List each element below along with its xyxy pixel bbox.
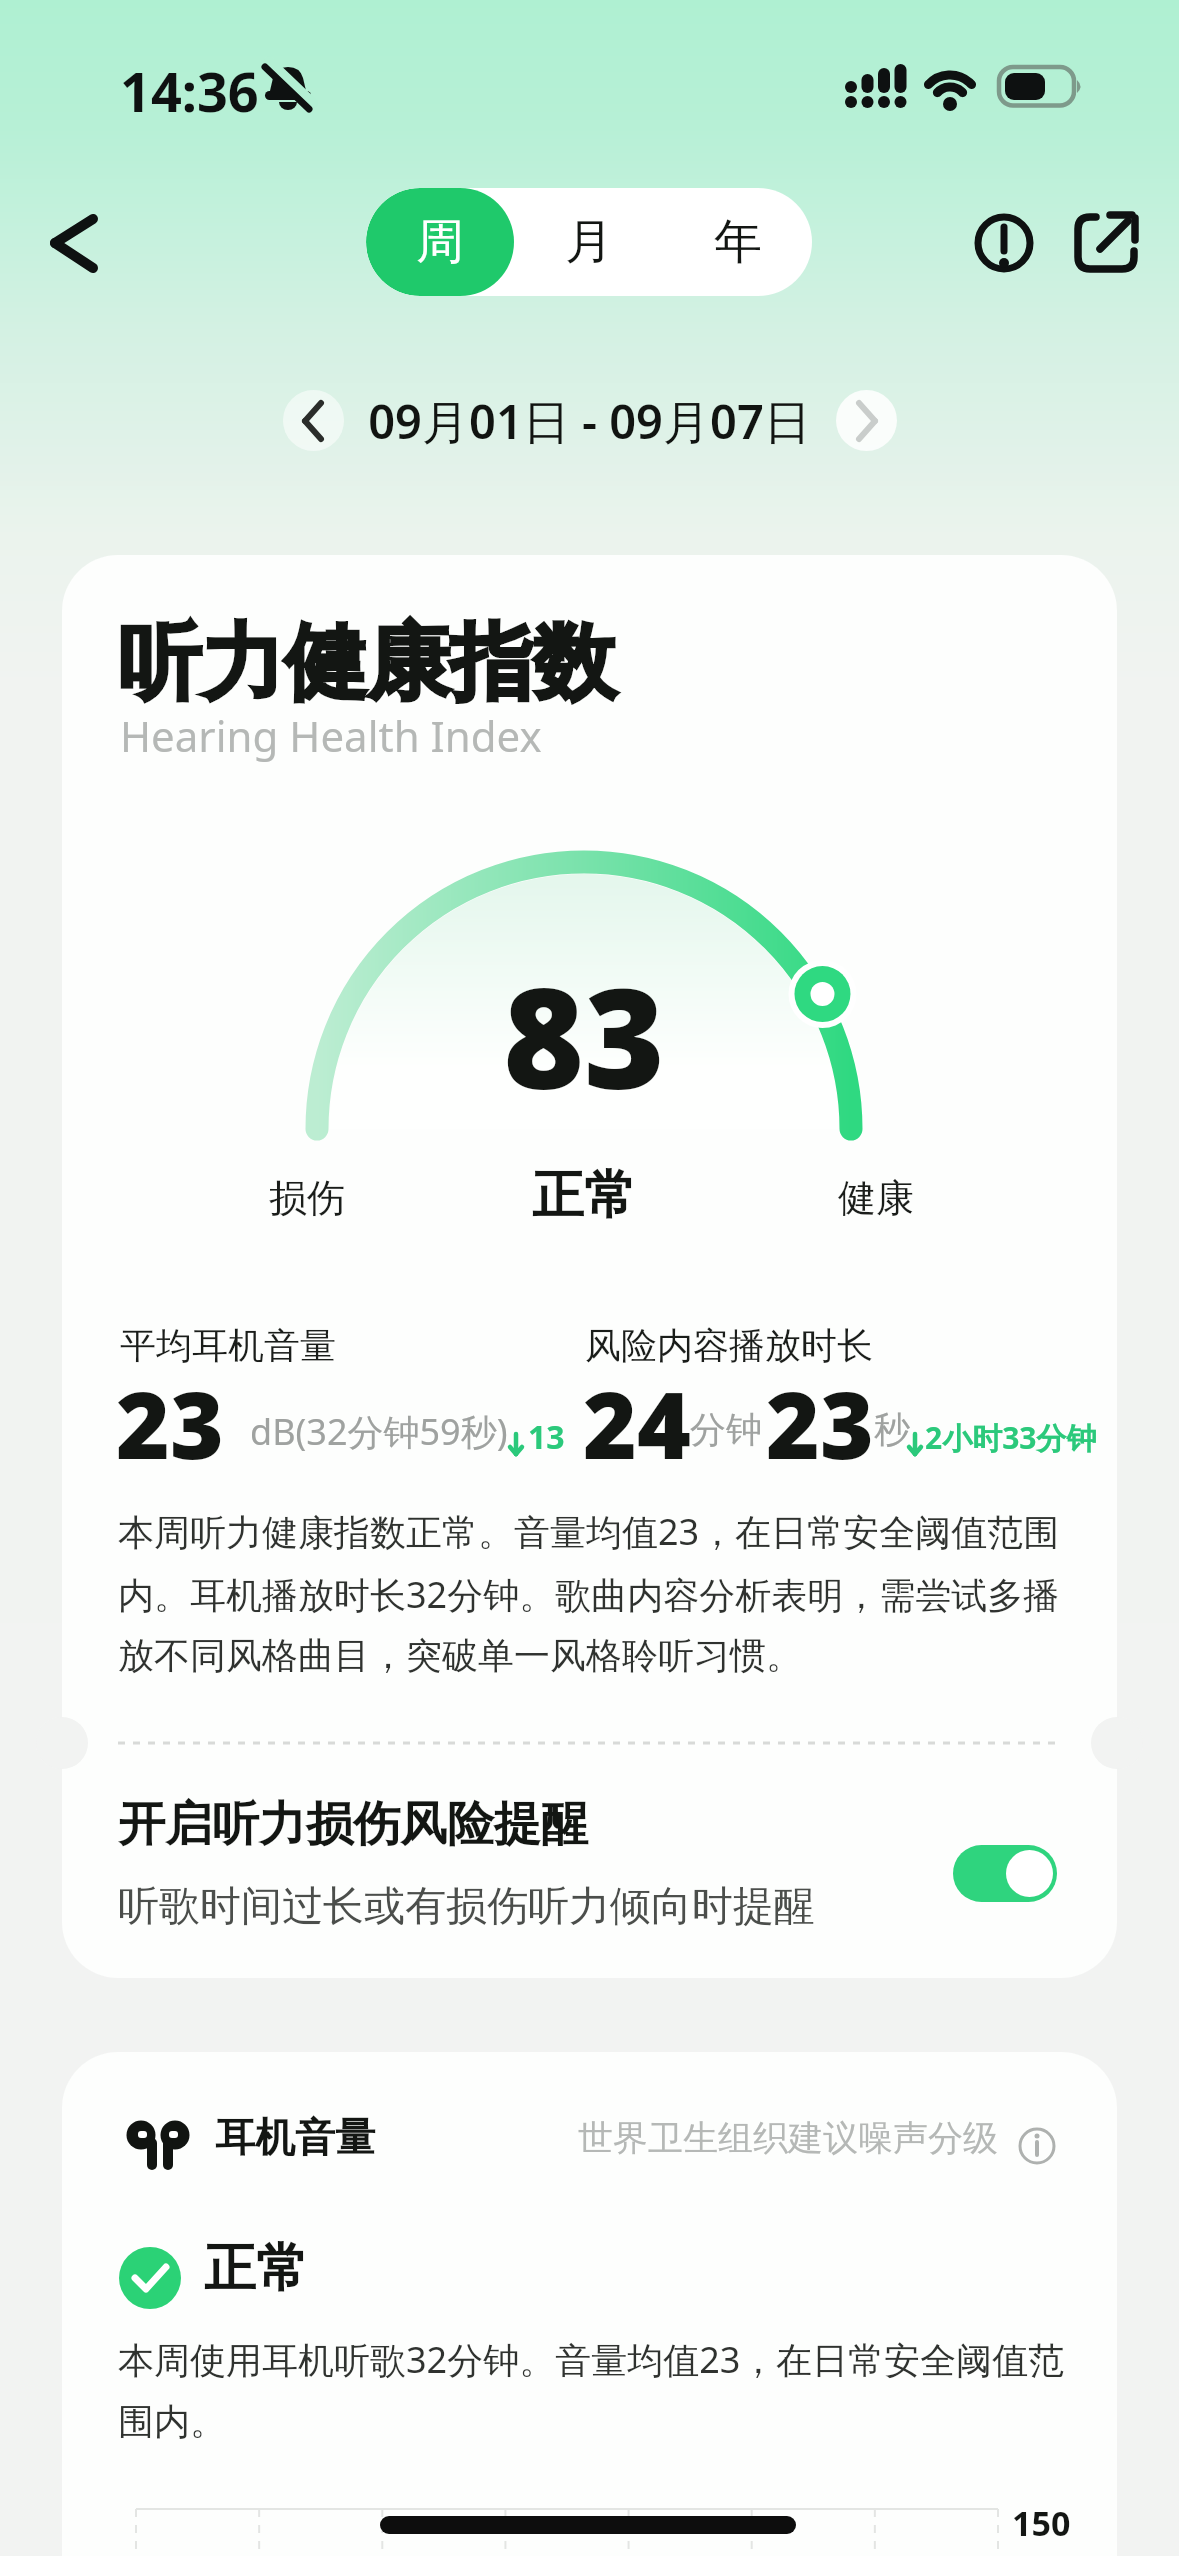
staticText: 损伤	[269, 1174, 345, 1222]
staticText: 世界卫生组织建议噪声分级	[578, 2116, 998, 2160]
staticText: 健康	[838, 1174, 914, 1222]
button[interactable]: 09月01日 - 09月07日	[197, 374, 982, 468]
staticText: 本周使用耳机听歌32分钟。音量均值23，在日常安全阈值范 围内。	[118, 2335, 1065, 2444]
staticText: 23	[766, 1361, 874, 1486]
staticText: 2小时33分钟	[925, 1417, 1097, 1458]
staticText: 秒	[874, 1407, 910, 1452]
button[interactable]	[40, 205, 116, 281]
staticText: 耳机音量	[215, 2112, 375, 2162]
button[interactable]: 周	[366, 188, 514, 296]
staticText: 风险内容播放时长	[585, 1323, 873, 1368]
staticText: Hearing Health Index	[120, 707, 542, 764]
button[interactable]	[953, 1845, 1057, 1902]
staticText: 09月01日 - 09月07日	[368, 389, 811, 453]
staticText: 13	[528, 1415, 565, 1459]
staticText: 83	[503, 941, 665, 1129]
staticText: 正常	[532, 1163, 636, 1229]
staticText: 听歌时间过长或有损伤听力倾向时提醒	[118, 1881, 815, 1933]
staticText: 23	[116, 1361, 224, 1486]
staticText: 开启听力损伤风险提醒	[118, 1795, 588, 1854]
button[interactable]: 月	[514, 188, 663, 296]
staticText: dB(32分钟59秒)	[250, 1407, 508, 1456]
button[interactable]	[283, 390, 344, 451]
staticText: 150	[1012, 2500, 1071, 2546]
button[interactable]	[1068, 205, 1144, 281]
button[interactable]	[966, 205, 1042, 281]
staticText: 分钟	[690, 1407, 762, 1452]
staticText: 听力健康指数	[118, 611, 616, 716]
staticText: 正常	[204, 2236, 308, 2302]
staticText: 年	[714, 212, 762, 272]
staticText: 14:36	[120, 54, 259, 128]
staticText: 周	[416, 212, 464, 272]
button[interactable]	[836, 390, 897, 451]
button[interactable]: 年	[663, 188, 812, 296]
staticText: 平均耳机音量	[120, 1323, 336, 1368]
staticText: 24	[583, 1361, 691, 1486]
staticText: 本周听力健康指数正常。音量均值23，在日常安全阈值范围 内。耳机播放时长32分钟…	[118, 1507, 1060, 1678]
staticText: 月	[565, 212, 613, 272]
